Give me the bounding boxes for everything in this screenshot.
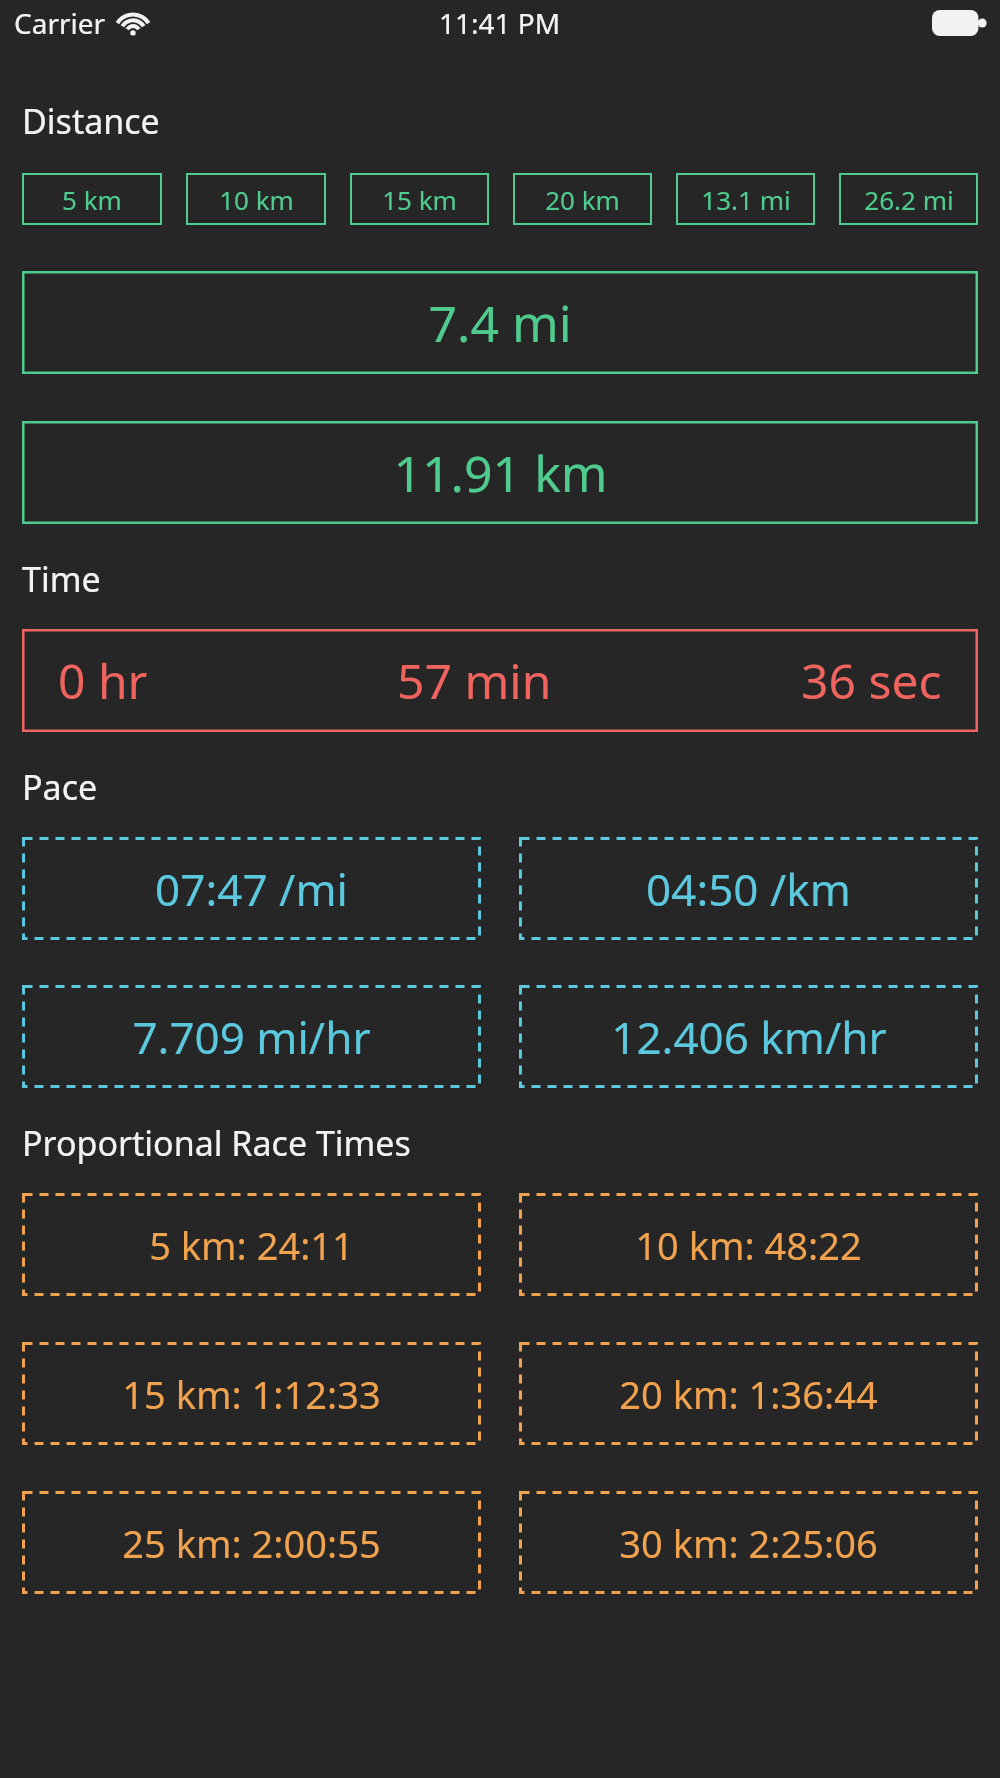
button[interactable]: 13.1 mi: [676, 173, 815, 225]
staticText: 57 min: [397, 648, 552, 713]
button[interactable]: 04:50 /km: [519, 837, 978, 940]
button[interactable]: 07:47 /mi: [22, 837, 481, 940]
staticText: 5 km: [62, 182, 122, 217]
button[interactable]: 20 km: [513, 173, 652, 225]
staticText: 20 km: 1:36:44: [619, 1368, 878, 1420]
button[interactable]: 0 hr: [22, 629, 978, 732]
button[interactable]: 15 km: 1:12:33: [22, 1342, 481, 1445]
staticText: 0 hr: [58, 648, 148, 713]
staticText: Pace: [22, 764, 98, 810]
other: Battery full: [932, 10, 986, 36]
staticText: Distance: [22, 98, 160, 144]
staticText: Carrier: [14, 4, 106, 42]
button[interactable]: 12.406 km/hr: [519, 985, 978, 1088]
staticText: Proportional Race Times: [22, 1120, 411, 1166]
button[interactable]: 25 km: 2:00:55: [22, 1491, 481, 1594]
button[interactable]: 10 km: 48:22: [519, 1193, 978, 1296]
staticText: 04:50 /km: [646, 859, 851, 919]
button[interactable]: 30 km: 2:25:06: [519, 1491, 978, 1594]
button[interactable]: 5 km: [22, 173, 162, 225]
staticText: 10 km: 48:22: [635, 1219, 862, 1271]
button[interactable]: 11.91 km: [22, 421, 978, 524]
staticText: 11:41 PM: [439, 4, 561, 42]
staticText: 15 km: 1:12:33: [122, 1368, 381, 1420]
button[interactable]: 20 km: 1:36:44: [519, 1342, 978, 1445]
staticText: 10 km: [219, 182, 294, 217]
button[interactable]: 10 km: [186, 173, 326, 225]
staticText: 13.1 mi: [701, 182, 791, 217]
button[interactable]: 7.709 mi/hr: [22, 985, 481, 1088]
button[interactable]: 7.4 mi: [22, 271, 978, 374]
staticText: 11.91 km: [393, 439, 608, 507]
staticText: 20 km: [545, 182, 620, 217]
button[interactable]: 26.2 mi: [839, 173, 978, 225]
staticText: 5 km: 24:11: [149, 1219, 354, 1271]
staticText: 15 km: [382, 182, 457, 217]
button[interactable]: 15 km: [350, 173, 489, 225]
staticText: 7.709 mi/hr: [132, 1007, 371, 1067]
staticText: 7.4 mi: [428, 289, 572, 357]
staticText: 25 km: 2:00:55: [122, 1517, 381, 1569]
staticText: Time: [22, 556, 101, 602]
staticText: 12.406 km/hr: [611, 1007, 887, 1067]
staticText: 30 km: 2:25:06: [619, 1517, 878, 1569]
staticText: 36 sec: [801, 648, 942, 713]
button[interactable]: 5 km: 24:11: [22, 1193, 481, 1296]
staticText: 26.2 mi: [864, 182, 954, 217]
staticText: 07:47 /mi: [155, 859, 348, 919]
other: Wi-Fi signal: [116, 10, 150, 36]
